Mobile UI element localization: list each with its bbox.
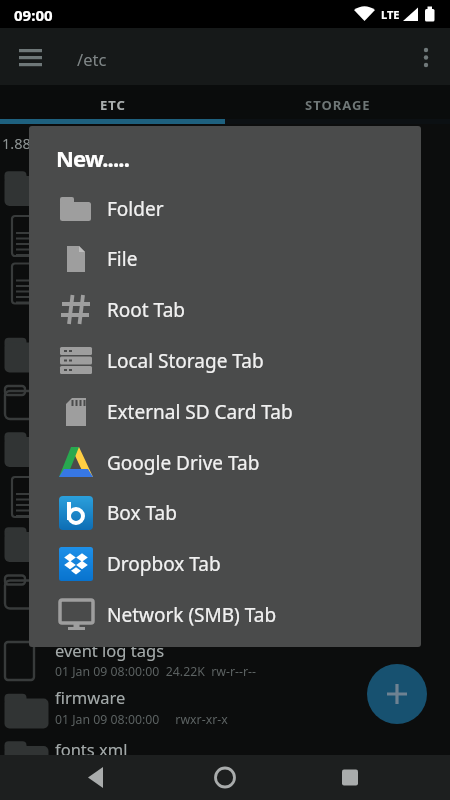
staticText: Root Tab	[107, 297, 185, 323]
button[interactable]	[76, 755, 124, 800]
button[interactable]: Network (SMB) Tab	[29, 590, 421, 639]
staticText: 09:00	[14, 5, 53, 25]
button[interactable]: Root Tab	[29, 285, 421, 334]
staticText: New.....	[56, 143, 130, 173]
staticText: firmware	[55, 686, 126, 708]
button[interactable]: Folder	[29, 184, 421, 233]
button[interactable]: File	[29, 234, 421, 283]
button[interactable]: Box Tab	[29, 488, 421, 537]
button[interactable]	[367, 664, 427, 724]
staticText: 01 Jan 09 08:00:00 24.22K rw-r--r--	[55, 663, 256, 680]
button[interactable]	[406, 38, 446, 82]
staticText: Local Storage Tab	[107, 348, 264, 374]
button[interactable]: STORAGE	[225, 85, 450, 124]
button[interactable]	[326, 755, 374, 800]
staticText: Google Drive Tab	[107, 450, 260, 476]
staticText: fonts xml	[55, 738, 128, 760]
button[interactable]: Google Drive Tab	[29, 438, 421, 487]
staticText: External SD Card Tab	[107, 399, 293, 425]
staticText: event log tags	[55, 639, 165, 661]
staticText: 1.88 GB free	[2, 133, 86, 153]
staticText: Folder	[107, 196, 164, 222]
staticText: Dropbox Tab	[107, 551, 221, 577]
staticText: LTE	[381, 7, 400, 22]
button[interactable]: ETC	[0, 85, 225, 124]
button[interactable]: Local Storage Tab	[29, 336, 421, 385]
button[interactable]: External SD Card Tab	[29, 387, 421, 436]
staticText: STORAGE	[305, 96, 371, 114]
staticText: /etc	[77, 48, 107, 70]
staticText: File	[107, 246, 138, 272]
staticText: Box Tab	[107, 500, 177, 526]
staticText: Network (SMB) Tab	[107, 602, 277, 628]
staticText: ETC	[100, 96, 126, 114]
button[interactable]	[201, 755, 249, 800]
button[interactable]	[8, 44, 54, 84]
staticText: 01 Jan 09 08:00:00 rwxr-xr-x	[55, 711, 228, 728]
button[interactable]: Dropbox Tab	[29, 539, 421, 588]
